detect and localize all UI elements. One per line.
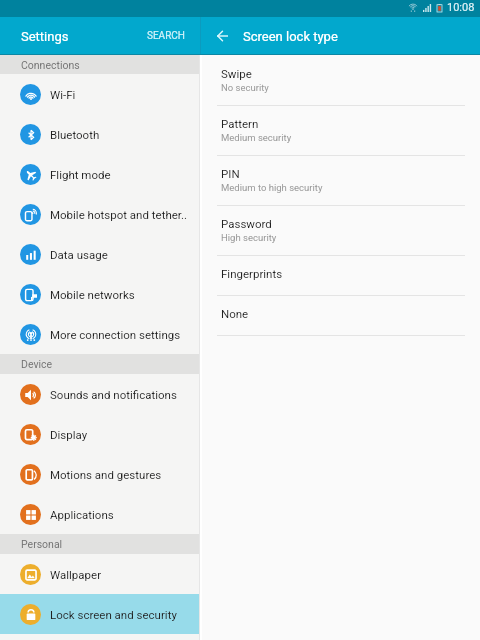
button[interactable]: Display bbox=[0, 414, 199, 454]
staticText: Fingerprints bbox=[221, 267, 283, 280]
staticText: Settings bbox=[21, 29, 69, 44]
button[interactable]: Mobile networks bbox=[0, 274, 199, 314]
staticText: Mobile networks bbox=[50, 288, 135, 301]
button[interactable]: Navigate up bbox=[199, 17, 241, 55]
staticText: PIN bbox=[221, 167, 240, 180]
staticText: Display bbox=[50, 428, 88, 441]
staticText: Lock screen and security bbox=[50, 608, 177, 621]
staticText: Flight mode bbox=[50, 168, 111, 181]
staticText: Applications bbox=[50, 508, 114, 521]
staticText: Bluetooth bbox=[50, 128, 100, 141]
button[interactable]: Wi-Fi bbox=[0, 74, 199, 114]
staticText: High security bbox=[221, 232, 277, 243]
staticText: Pattern bbox=[221, 117, 259, 130]
staticText: Password bbox=[221, 217, 272, 230]
button[interactable]: Flight mode bbox=[0, 154, 199, 194]
staticText: Data usage bbox=[50, 248, 108, 261]
staticText: Screen lock type bbox=[243, 29, 338, 44]
staticText: Personal bbox=[21, 538, 63, 550]
button[interactable]: Bluetooth bbox=[0, 114, 199, 154]
staticText: 10:08 bbox=[447, 1, 475, 14]
button[interactable]: PIN bbox=[202, 156, 480, 206]
staticText: Wi-Fi bbox=[50, 88, 76, 101]
button[interactable]: Wallpaper bbox=[0, 554, 199, 594]
button[interactable]: Applications bbox=[0, 494, 199, 534]
staticText: Swipe bbox=[221, 67, 252, 80]
button[interactable]: Fingerprints bbox=[202, 256, 480, 296]
button[interactable]: More connection settings bbox=[0, 314, 199, 354]
staticText: Medium to high security bbox=[221, 182, 323, 193]
button[interactable]: Pattern bbox=[202, 106, 480, 156]
button[interactable]: Motions and gestures bbox=[0, 454, 199, 494]
staticText: None bbox=[221, 307, 249, 320]
button[interactable]: Data usage bbox=[0, 234, 199, 274]
button[interactable]: Swipe bbox=[202, 56, 480, 106]
staticText: Mobile hotspot and tether.. bbox=[50, 208, 188, 221]
staticText: Motions and gestures bbox=[50, 468, 162, 481]
staticText: Medium security bbox=[221, 132, 292, 143]
button[interactable]: SEARCH bbox=[142, 24, 190, 48]
staticText: Connections bbox=[21, 59, 80, 71]
button[interactable]: Lock screen and security bbox=[0, 594, 199, 634]
button[interactable]: Password bbox=[202, 206, 480, 256]
staticText: More connection settings bbox=[50, 328, 181, 341]
staticText: No security bbox=[221, 82, 269, 93]
staticText: Wallpaper bbox=[50, 568, 102, 581]
staticText: SEARCH bbox=[147, 30, 185, 42]
button[interactable]: None bbox=[202, 296, 480, 336]
staticText: Sounds and notifications bbox=[50, 388, 177, 401]
button[interactable]: Sounds and notifications bbox=[0, 374, 199, 414]
button[interactable]: Mobile hotspot and tether.. bbox=[0, 194, 199, 234]
staticText: Device bbox=[21, 358, 53, 370]
